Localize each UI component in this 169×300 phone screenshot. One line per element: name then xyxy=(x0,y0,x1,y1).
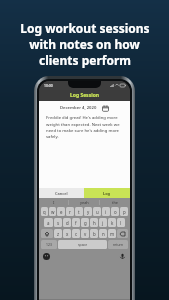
button[interactable]: v xyxy=(81,229,89,238)
staticText: 123 xyxy=(46,242,52,247)
staticText: c xyxy=(75,231,78,237)
staticText: z xyxy=(57,231,60,237)
button[interactable]: s xyxy=(54,218,62,227)
staticText: I xyxy=(53,200,55,205)
staticText: u xyxy=(96,209,99,215)
button[interactable]: u xyxy=(93,207,101,216)
button[interactable]: o xyxy=(111,207,119,216)
button[interactable]: 123 xyxy=(41,240,57,249)
button[interactable]: Freddie did great! He's adding more weig… xyxy=(46,115,123,139)
button[interactable]: w xyxy=(49,207,56,216)
staticText: g xyxy=(84,220,87,226)
staticText: a xyxy=(47,220,50,226)
staticText: l xyxy=(120,220,122,226)
staticText: y xyxy=(87,209,90,215)
button[interactable]: the xyxy=(100,198,130,207)
button[interactable]: e xyxy=(57,207,65,216)
button[interactable]: space xyxy=(58,240,107,249)
button[interactable]: l xyxy=(117,218,125,227)
staticText: with notes on how xyxy=(29,36,140,52)
staticText: p xyxy=(123,209,126,215)
staticText: m xyxy=(110,231,115,237)
staticText: x xyxy=(66,231,69,237)
button[interactable]: Log Session xyxy=(39,90,130,101)
button[interactable]: x xyxy=(63,229,71,238)
button[interactable]: j xyxy=(99,218,107,227)
button[interactable]: a xyxy=(44,218,53,227)
staticText: clients perform xyxy=(39,52,131,68)
staticText: Log workout sessions xyxy=(20,20,150,36)
staticText: k xyxy=(111,220,114,226)
staticText: o xyxy=(114,209,117,215)
button[interactable]: y xyxy=(84,207,92,216)
button[interactable]: m xyxy=(108,229,116,238)
button[interactable]: December 4, 2020 xyxy=(39,101,130,115)
button[interactable]: k xyxy=(108,218,116,227)
button[interactable]: p xyxy=(120,207,128,216)
staticText: Log xyxy=(103,191,111,196)
staticText: w xyxy=(51,209,55,215)
staticText: return xyxy=(113,242,124,247)
button[interactable]: yeah xyxy=(69,198,99,207)
staticText: Freddie did great! He's adding more weig… xyxy=(46,115,123,139)
button[interactable]: b xyxy=(90,229,98,238)
button[interactable]: Emoji xyxy=(43,253,50,260)
button[interactable]: n xyxy=(99,229,107,238)
button[interactable]: i xyxy=(102,207,110,216)
staticText: 10:00 xyxy=(44,83,53,88)
button[interactable]: Cancel xyxy=(39,188,84,198)
staticText: t xyxy=(78,209,80,215)
button[interactable]: c xyxy=(72,229,80,238)
button[interactable]: g xyxy=(81,218,89,227)
staticText: v xyxy=(84,231,87,237)
button[interactable]: r xyxy=(66,207,74,216)
button[interactable]: return xyxy=(108,240,128,249)
staticText: n xyxy=(102,231,105,237)
staticText: h xyxy=(93,220,96,226)
staticText: f xyxy=(75,220,77,226)
button[interactable]: f xyxy=(72,218,80,227)
button[interactable]: Dictate xyxy=(119,253,126,260)
button[interactable]: I xyxy=(39,198,68,207)
button[interactable]: q xyxy=(41,207,48,216)
button[interactable]: d xyxy=(63,218,71,227)
button[interactable]: Delete xyxy=(117,229,128,238)
button[interactable]: Shift xyxy=(41,229,53,238)
staticText: the xyxy=(112,200,119,205)
button[interactable]: Pick date xyxy=(102,105,109,112)
button[interactable]: t xyxy=(75,207,83,216)
staticText: r xyxy=(69,209,71,215)
staticText: b xyxy=(93,231,96,237)
staticText: Cancel xyxy=(55,191,68,196)
button[interactable]: z xyxy=(54,229,62,238)
staticText: Log Session xyxy=(70,92,100,99)
staticText: i xyxy=(105,209,107,215)
button[interactable]: Log xyxy=(84,188,130,198)
staticText: December 4, 2020 xyxy=(60,105,97,111)
button[interactable]: h xyxy=(90,218,98,227)
staticText: space xyxy=(78,242,88,247)
staticText: q xyxy=(43,209,46,215)
staticText: j xyxy=(102,220,104,226)
staticText: e xyxy=(60,209,63,215)
staticText: yeah xyxy=(80,200,89,205)
staticText: s xyxy=(57,220,60,226)
staticText: d xyxy=(66,220,69,226)
